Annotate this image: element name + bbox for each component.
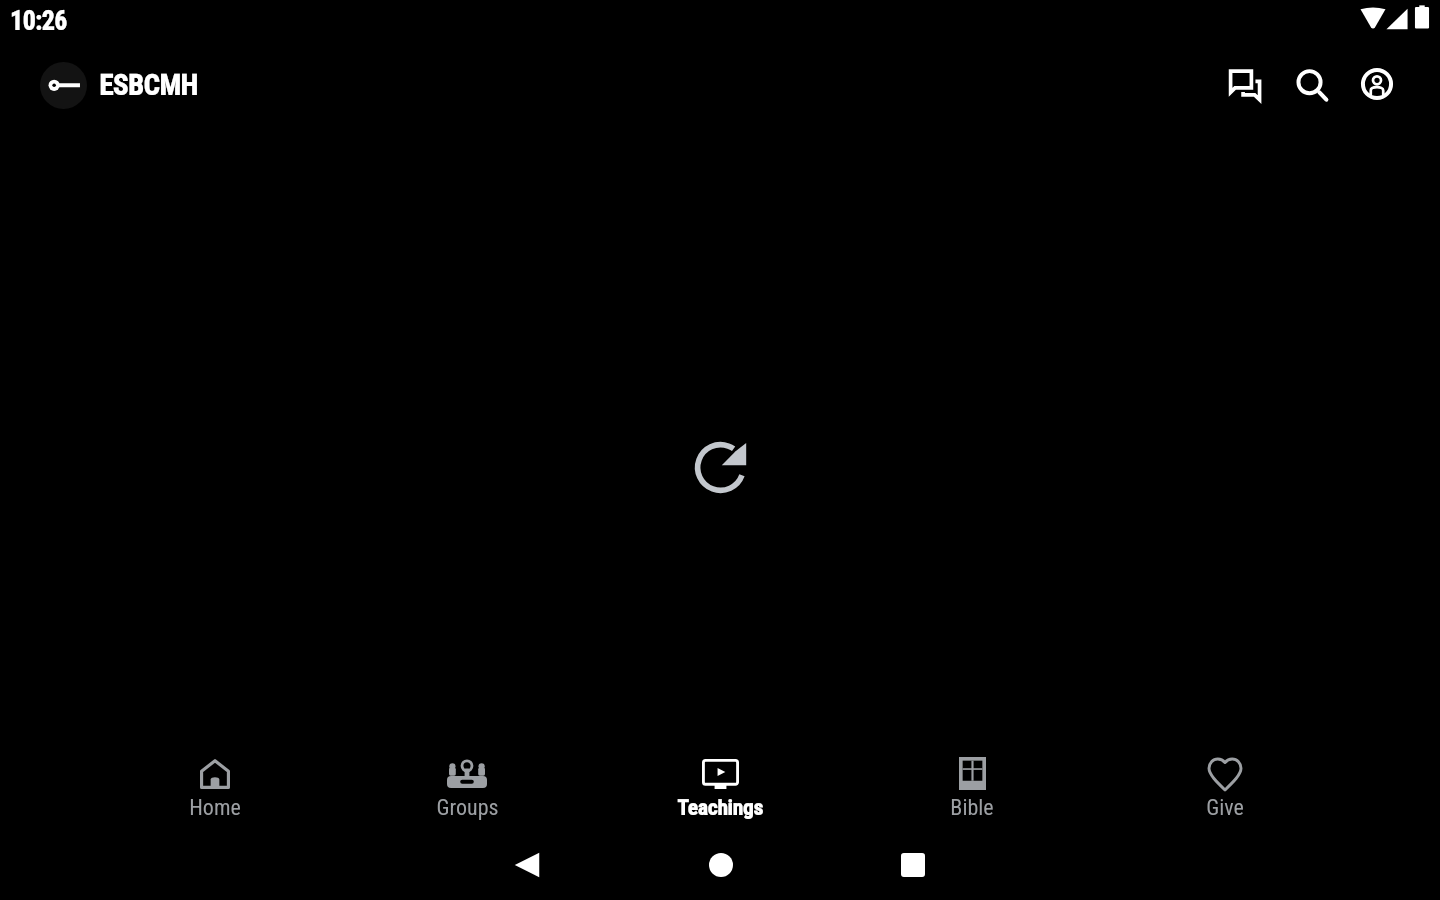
button[interactable]: Teachings — [658, 750, 782, 824]
button[interactable]: Give — [1163, 750, 1287, 824]
staticText: Teachings — [677, 796, 763, 821]
button[interactable]: Home — [691, 835, 751, 895]
staticText: 10:26 — [10, 7, 67, 36]
staticText: Home — [189, 795, 241, 821]
button[interactable]: Bible — [910, 750, 1034, 824]
button[interactable]: Back — [497, 835, 557, 895]
button[interactable]: Account — [1349, 56, 1405, 112]
staticText: Groups — [436, 795, 499, 821]
staticText: ESBCMH — [99, 69, 198, 102]
button[interactable]: ESBCMH logo — [40, 62, 87, 109]
staticText: Give — [1206, 795, 1244, 821]
staticText: Bible — [950, 795, 994, 821]
button[interactable]: Search — [1283, 56, 1339, 112]
button[interactable]: Messages — [1217, 56, 1273, 112]
button[interactable]: Home — [153, 750, 277, 824]
button[interactable]: Groups — [405, 750, 529, 824]
button[interactable]: Recent apps — [883, 835, 943, 895]
